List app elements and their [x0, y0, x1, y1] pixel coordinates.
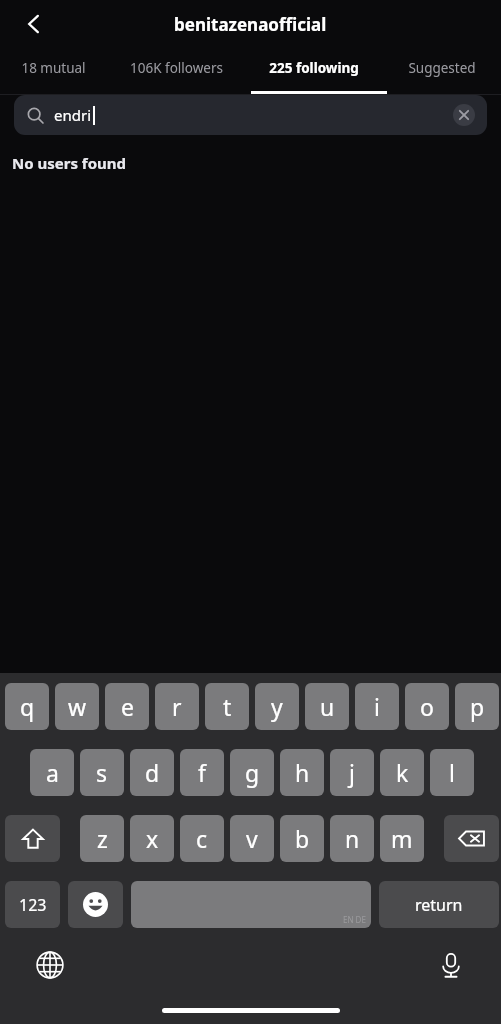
- staticText: k: [396, 757, 409, 788]
- staticText: return: [415, 894, 463, 916]
- staticText: w: [68, 691, 87, 722]
- staticText: g: [245, 757, 260, 788]
- button[interactable]: d: [130, 749, 174, 796]
- button[interactable]: f: [180, 749, 224, 796]
- button[interactable]: s: [80, 749, 124, 796]
- staticText: i: [374, 691, 380, 722]
- button[interactable]: b: [280, 815, 324, 862]
- staticText: n: [345, 823, 360, 854]
- staticText: h: [295, 757, 310, 788]
- staticText: u: [320, 691, 335, 722]
- button[interactable]: v: [230, 815, 274, 862]
- button[interactable]: return: [379, 881, 499, 928]
- button[interactable]: u: [305, 683, 349, 730]
- staticText: benitazenaofficial: [174, 13, 327, 36]
- staticText: v: [246, 823, 258, 854]
- staticText: c: [196, 823, 208, 854]
- button[interactable]: r: [155, 683, 199, 730]
- button[interactable]: l: [430, 749, 474, 796]
- staticText: p: [470, 691, 485, 722]
- button[interactable]: Backspace: [444, 815, 499, 862]
- staticText: endri: [54, 105, 92, 125]
- staticText: 225 following: [269, 59, 359, 77]
- staticText: a: [46, 757, 59, 788]
- staticText: r: [172, 691, 182, 722]
- staticText: s: [96, 757, 108, 788]
- button[interactable]: 106K followers: [106, 48, 246, 88]
- button[interactable]: e: [105, 683, 149, 730]
- button[interactable]: 123: [5, 881, 60, 928]
- button[interactable]: z: [80, 815, 124, 862]
- staticText: t: [223, 691, 232, 722]
- staticText: j: [349, 757, 355, 788]
- button[interactable]: endri: [14, 95, 487, 135]
- staticText: b: [295, 823, 310, 854]
- staticText: 18 mutual: [21, 59, 86, 77]
- button[interactable]: t: [205, 683, 249, 730]
- staticText: No users found: [12, 153, 127, 173]
- staticText: d: [145, 757, 160, 788]
- button[interactable]: i: [355, 683, 399, 730]
- button[interactable]: Space: [131, 881, 371, 928]
- staticText: 106K followers: [130, 59, 223, 77]
- staticText: y: [271, 691, 283, 722]
- button[interactable]: n: [330, 815, 374, 862]
- button[interactable]: 225 following: [246, 48, 382, 88]
- staticText: Suggested: [408, 59, 476, 77]
- staticText: 123: [19, 894, 47, 916]
- staticText: o: [420, 691, 434, 722]
- button[interactable]: Back: [12, 2, 56, 46]
- button[interactable]: j: [330, 749, 374, 796]
- button[interactable]: c: [180, 815, 224, 862]
- staticText: z: [97, 823, 108, 854]
- button[interactable]: o: [405, 683, 449, 730]
- button[interactable]: m: [380, 815, 424, 862]
- button[interactable]: Dictation: [429, 943, 473, 987]
- button[interactable]: p: [455, 683, 499, 730]
- staticText: EN DE: [343, 914, 366, 925]
- button[interactable]: a: [30, 749, 74, 796]
- button[interactable]: k: [380, 749, 424, 796]
- staticText: l: [449, 757, 455, 788]
- button[interactable]: g: [230, 749, 274, 796]
- staticText: e: [121, 691, 134, 722]
- button[interactable]: Shift: [5, 815, 60, 862]
- button[interactable]: h: [280, 749, 324, 796]
- button[interactable]: Clear text: [453, 104, 475, 126]
- staticText: q: [20, 691, 35, 722]
- button[interactable]: x: [130, 815, 174, 862]
- staticText: x: [146, 823, 159, 854]
- button[interactable]: Change keyboard language: [28, 943, 72, 987]
- button[interactable]: q: [5, 683, 49, 730]
- button[interactable]: 18 mutual: [0, 48, 106, 88]
- staticText: f: [198, 757, 206, 788]
- button[interactable]: w: [55, 683, 99, 730]
- button[interactable]: y: [255, 683, 299, 730]
- button[interactable]: Emoji: [68, 881, 123, 928]
- staticText: m: [391, 823, 413, 854]
- button[interactable]: Suggested: [382, 48, 501, 88]
